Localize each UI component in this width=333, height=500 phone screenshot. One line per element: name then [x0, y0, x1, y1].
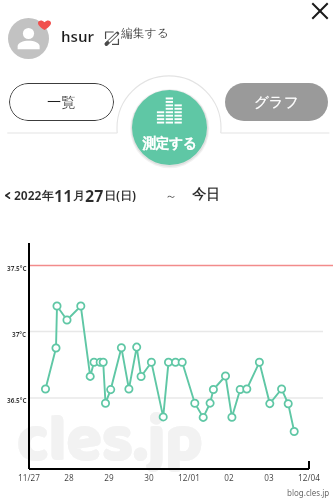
staticText: 27 — [85, 185, 104, 205]
button[interactable]: 今日 — [192, 186, 220, 204]
staticText: 編集する — [121, 26, 169, 41]
staticText: ～ — [165, 188, 177, 203]
button[interactable]: Profile — [8, 18, 49, 59]
staticText: 一覧 — [47, 93, 76, 111]
staticText: 37°C — [12, 330, 27, 339]
staticText: 11/27 — [18, 472, 40, 483]
button[interactable]: 編集する — [104, 22, 169, 44]
staticText: 36.5°C — [7, 396, 27, 405]
staticText: グラフ — [254, 93, 299, 111]
staticText: 日(日) — [104, 187, 137, 203]
button[interactable]: 測定する — [132, 90, 207, 165]
staticText: hsur — [61, 26, 95, 46]
staticText: blog.cles.jp — [287, 487, 330, 498]
button[interactable]: Close — [306, 0, 333, 28]
staticText: 28 — [64, 472, 74, 483]
button[interactable]: 一覧 — [9, 83, 114, 121]
staticText: 11 — [54, 185, 73, 205]
staticText: 測定する — [142, 135, 197, 152]
staticText: cles.jp — [17, 389, 203, 493]
staticText: 2022年 — [14, 187, 54, 203]
staticText: 30 — [144, 472, 154, 483]
staticText: 12/04 — [298, 472, 320, 483]
staticText: 03 — [264, 472, 274, 483]
staticText: 月 — [73, 188, 85, 203]
staticText: 29 — [104, 472, 114, 483]
staticText: 12/01 — [178, 472, 200, 483]
staticText: 37.5°C — [7, 264, 27, 273]
button[interactable]: 2022年 — [3, 185, 137, 205]
staticText: 今日 — [192, 186, 220, 204]
staticText: 02 — [224, 472, 234, 483]
button[interactable]: グラフ — [225, 83, 328, 121]
